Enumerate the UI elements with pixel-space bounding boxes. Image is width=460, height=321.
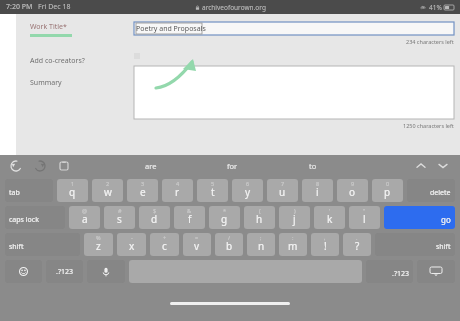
button[interactable]: shift [375, 233, 455, 256]
button[interactable]: ) [279, 206, 310, 229]
staticText: Summary [30, 78, 62, 88]
button[interactable]: / [215, 233, 243, 256]
button[interactable]: ( [244, 206, 275, 229]
button[interactable]: % [84, 233, 113, 256]
staticText: g [221, 212, 228, 226]
staticText: archiveofourown.org [202, 3, 266, 12]
button[interactable]: # [104, 206, 135, 229]
button[interactable]: for [213, 158, 252, 174]
button[interactable]: Emoji [5, 260, 42, 283]
staticText: 9 [351, 180, 355, 187]
staticText: w [104, 185, 112, 199]
button[interactable]: , [311, 233, 339, 256]
staticText: x [129, 239, 135, 253]
button[interactable]: caps lock [5, 206, 65, 229]
button[interactable]: = [183, 233, 211, 256]
staticText: - [131, 234, 133, 241]
button[interactable]: Undo [8, 158, 24, 174]
staticText: 1 [71, 180, 75, 187]
staticText: b [226, 239, 233, 253]
staticText: .?123 [56, 267, 73, 277]
staticText: q [69, 185, 76, 199]
staticText: 4 [176, 180, 180, 187]
button[interactable]: delete [407, 179, 455, 202]
button[interactable]: Redo [32, 158, 48, 174]
button[interactable]: Next field [436, 159, 450, 173]
staticText: 234 characters left [406, 38, 454, 45]
staticText: caps lock [9, 215, 39, 225]
button[interactable]: ; [247, 233, 275, 256]
staticText: shift [436, 242, 451, 252]
button[interactable]: * [209, 206, 240, 229]
button[interactable]: 1 [57, 179, 88, 202]
staticText: + [163, 234, 167, 241]
staticText: . [356, 234, 358, 241]
button[interactable]: . [343, 233, 371, 256]
staticText: , [324, 234, 326, 241]
button[interactable]: .?123 [366, 260, 413, 283]
button[interactable]: go [384, 206, 455, 229]
button[interactable]: Poetry and Proposals [134, 22, 454, 35]
staticText: u [279, 185, 286, 199]
staticText: ; [260, 234, 262, 241]
button[interactable]: Paste [56, 158, 72, 174]
staticText: & [187, 207, 192, 214]
staticText: f [188, 212, 192, 226]
button[interactable]: & [174, 206, 205, 229]
staticText: : [292, 234, 294, 241]
staticText: 41% [429, 3, 442, 12]
staticText: Fri Dec 18 [38, 2, 71, 12]
staticText: v [194, 239, 200, 253]
staticText: i [316, 185, 319, 199]
button[interactable]: ' [314, 206, 345, 229]
staticText: ! [324, 239, 327, 253]
button[interactable]: + [150, 233, 179, 256]
button[interactable]: Hide keyboard [417, 260, 455, 283]
button[interactable]: 0 [372, 179, 403, 202]
staticText: 3 [141, 180, 145, 187]
button[interactable]: @ [69, 206, 100, 229]
button[interactable]: Voice input [87, 260, 125, 283]
button[interactable]: Previous field [414, 159, 428, 173]
staticText: 1250 characters left [403, 122, 454, 129]
button[interactable]: 4 [162, 179, 193, 202]
button[interactable]: to [295, 158, 331, 174]
button[interactable]: 8 [302, 179, 333, 202]
button[interactable]: 6 [232, 179, 263, 202]
staticText: h [256, 212, 263, 226]
staticText: for [227, 161, 238, 171]
button[interactable]: .?123 [46, 260, 83, 283]
staticText: 7 [281, 180, 285, 187]
staticText: d [151, 212, 158, 226]
staticText: shift [9, 242, 24, 252]
staticText: e [140, 185, 146, 199]
staticText: n [258, 239, 265, 253]
button[interactable]: 3 [127, 179, 158, 202]
staticText: / [228, 234, 231, 241]
button[interactable]: $ [139, 206, 170, 229]
staticText: k [327, 212, 333, 226]
button[interactable]: are [131, 158, 171, 174]
button[interactable]: 5 [197, 179, 228, 202]
button[interactable]: 9 [337, 179, 368, 202]
staticText: Add co-creators? [30, 56, 85, 66]
button[interactable] [134, 66, 454, 119]
button[interactable]: 7 [267, 179, 298, 202]
staticText: ' [329, 207, 331, 214]
button[interactable]: 2 [92, 179, 123, 202]
staticText: r [175, 185, 180, 199]
staticText: * [223, 207, 227, 214]
button[interactable]: " [349, 206, 380, 229]
button[interactable]: - [117, 233, 146, 256]
button[interactable]: shift [5, 233, 80, 256]
staticText: ) [294, 207, 296, 214]
button[interactable]: : [279, 233, 307, 256]
staticText: 5 [211, 180, 215, 187]
staticText: go [441, 214, 451, 225]
staticText: Poetry and Proposals [136, 24, 206, 34]
staticText: s [117, 212, 122, 226]
staticText: are [145, 161, 157, 171]
button[interactable]: tab [5, 179, 53, 202]
